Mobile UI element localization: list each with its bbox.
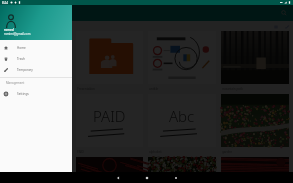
staticText: Settings bbox=[17, 92, 29, 96]
button[interactable]: PAID bbox=[76, 94, 143, 157]
staticText: PAID bbox=[93, 106, 126, 126]
button[interactable]: Abc bbox=[148, 94, 216, 157]
button[interactable]: garden bbox=[221, 94, 289, 157]
button[interactable]: Recent apps bbox=[164, 172, 188, 183]
button[interactable]: building bbox=[76, 157, 143, 172]
staticText: Presentation bbox=[77, 87, 95, 91]
button[interactable]: Documents bbox=[4, 31, 71, 94]
button[interactable]: Back bbox=[106, 172, 130, 183]
staticText: ramimi@gmail.com bbox=[4, 32, 31, 36]
button[interactable]: Home bbox=[135, 172, 159, 183]
staticText: Temporary bbox=[17, 68, 33, 72]
button[interactable]: Temporary bbox=[0, 64, 72, 75]
staticText: Trash bbox=[17, 57, 25, 61]
button[interactable]: Presentation bbox=[76, 31, 143, 94]
button[interactable]: Search bbox=[279, 8, 289, 18]
button[interactable]: Trash bbox=[0, 53, 72, 64]
staticText: garden bbox=[222, 150, 233, 154]
button[interactable]: Settings bbox=[0, 88, 72, 99]
staticText: untitle bbox=[149, 87, 159, 91]
button[interactable]: red flowers bbox=[148, 157, 216, 172]
button[interactable]: mountain path bbox=[221, 31, 289, 94]
staticText: Home bbox=[17, 46, 26, 50]
staticText: ramed bbox=[4, 28, 14, 32]
staticText: Abc bbox=[169, 106, 195, 126]
button[interactable]: ok bbox=[4, 94, 71, 157]
staticText: 8:24 bbox=[2, 1, 8, 5]
staticText: Management bbox=[6, 81, 25, 85]
button[interactable]: abstract bbox=[221, 157, 289, 172]
button[interactable]: untitle bbox=[148, 31, 216, 94]
button[interactable]: Home bbox=[0, 42, 72, 53]
